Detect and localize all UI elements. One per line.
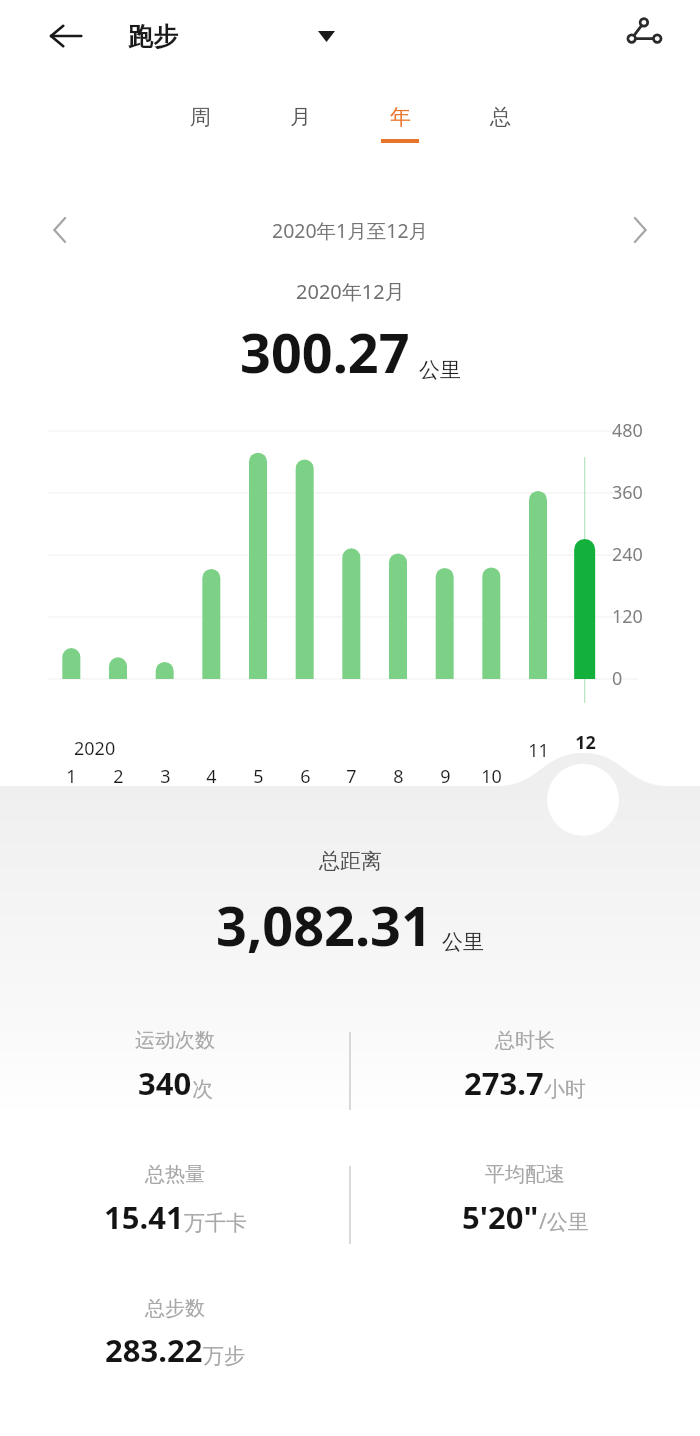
staticText: 5'20" bbox=[462, 1196, 539, 1238]
button[interactable]: 周 bbox=[170, 104, 230, 139]
staticText: 平均配速 bbox=[485, 1162, 565, 1187]
staticText: 跑步 bbox=[128, 21, 178, 52]
staticText: 总时长 bbox=[495, 1028, 555, 1053]
staticText: 运动次数 bbox=[135, 1028, 215, 1053]
staticText: 总步数 bbox=[145, 1296, 205, 1321]
staticText: 4 bbox=[206, 764, 217, 789]
staticText: 公里 bbox=[419, 357, 461, 383]
staticText: 年 bbox=[390, 104, 411, 130]
button[interactable]: 总 bbox=[470, 104, 530, 139]
staticText: 11 bbox=[528, 738, 549, 763]
staticText: 总 bbox=[490, 104, 511, 130]
staticText: 10 bbox=[481, 764, 502, 789]
staticText: 小时 bbox=[544, 1076, 586, 1102]
button[interactable]: Next year bbox=[614, 204, 666, 256]
staticText: 2020年1月至12月 bbox=[272, 217, 429, 244]
button[interactable]: Choose sport type bbox=[300, 10, 352, 62]
staticText: 2020 bbox=[74, 736, 116, 761]
staticText: 480 bbox=[612, 418, 643, 443]
staticText: 万步 bbox=[203, 1343, 245, 1369]
staticText: 0 bbox=[612, 666, 623, 691]
staticText: 8 bbox=[393, 764, 404, 789]
staticText: 次 bbox=[192, 1076, 213, 1102]
staticText: 240 bbox=[612, 542, 643, 567]
staticText: 360 bbox=[612, 480, 643, 505]
button[interactable]: 年 bbox=[370, 104, 430, 143]
staticText: 月 bbox=[290, 104, 311, 130]
button[interactable]: Previous year bbox=[34, 204, 86, 256]
button[interactable]: 总时长 bbox=[350, 1028, 700, 1138]
button[interactable]: 平均配速 bbox=[350, 1162, 700, 1272]
staticText: 273.7 bbox=[464, 1062, 544, 1104]
staticText: 总热量 bbox=[145, 1162, 205, 1187]
staticText: 万千卡 bbox=[184, 1210, 247, 1236]
staticText: 6 bbox=[300, 764, 311, 789]
button[interactable]: 总热量 bbox=[0, 1162, 350, 1272]
staticText: 2 bbox=[113, 764, 124, 789]
staticText: 120 bbox=[612, 604, 643, 629]
staticText: 340 bbox=[138, 1062, 192, 1104]
button[interactable]: Share bbox=[614, 4, 676, 66]
button[interactable]: 运动次数 bbox=[0, 1028, 350, 1138]
button[interactable]: Back bbox=[36, 6, 96, 66]
staticText: 300.27 bbox=[240, 315, 410, 389]
staticText: 3,082.31 bbox=[216, 888, 432, 962]
staticText: 3 bbox=[160, 764, 171, 789]
staticText: 2020年12月 bbox=[296, 278, 405, 305]
staticText: 总距离 bbox=[319, 848, 382, 874]
staticText: 5 bbox=[253, 764, 264, 789]
staticText: 7 bbox=[346, 764, 357, 789]
button[interactable]: 月 bbox=[270, 104, 330, 139]
staticText: 公里 bbox=[442, 929, 484, 955]
staticText: 283.22 bbox=[105, 1329, 203, 1371]
staticText: 15.41 bbox=[104, 1196, 184, 1238]
staticText: 9 bbox=[440, 764, 451, 789]
staticText: 周 bbox=[190, 104, 211, 130]
staticText: 1 bbox=[66, 764, 77, 789]
staticText: /公里 bbox=[539, 1207, 589, 1236]
button[interactable]: 跑步 bbox=[128, 0, 178, 72]
staticText: 12 bbox=[575, 730, 596, 755]
